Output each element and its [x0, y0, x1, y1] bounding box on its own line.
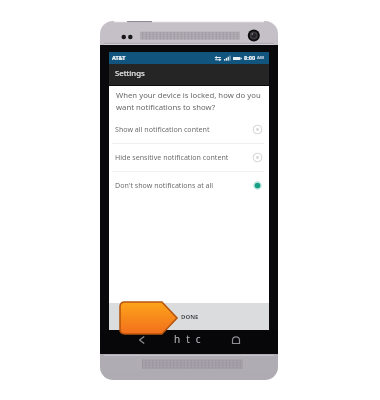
button[interactable]: Home	[229, 333, 243, 347]
button[interactable]: Settings	[109, 64, 269, 86]
staticText: AM	[257, 55, 264, 61]
button[interactable]: Don't show notifications at all	[109, 172, 269, 199]
button[interactable]: DONE	[109, 303, 269, 330]
button[interactable]: htc	[174, 332, 207, 346]
staticText: When your device is locked, how do you w…	[116, 90, 264, 112]
staticText: 8:00	[244, 54, 256, 62]
staticText: Hide sensitive notification content	[115, 152, 229, 162]
staticText: Don't show notifications at all	[115, 180, 214, 190]
button[interactable]: Back	[135, 333, 149, 347]
button[interactable]: Tap Done	[120, 302, 177, 334]
button[interactable]: Show all notification content	[109, 116, 269, 143]
staticText: Settings	[115, 68, 145, 79]
staticText: AT&T	[112, 54, 126, 61]
button[interactable]: Hide sensitive notification content	[109, 144, 269, 171]
staticText: Show all notification content	[115, 124, 210, 134]
staticText: DONE	[181, 313, 199, 321]
